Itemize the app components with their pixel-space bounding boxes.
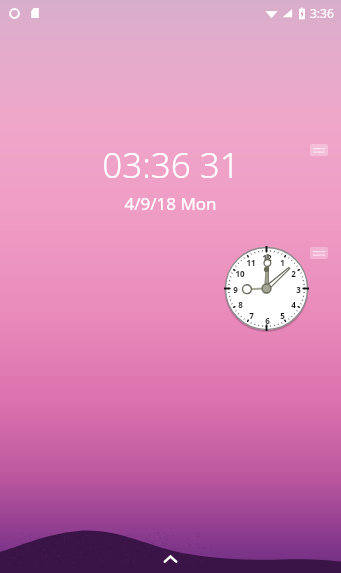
staticText: 3 bbox=[296, 284, 301, 295]
staticText: 3:36 bbox=[310, 5, 334, 21]
staticText: 5 bbox=[280, 310, 285, 321]
button[interactable]: 03:36 31 bbox=[0, 141, 341, 215]
staticText: 12 bbox=[262, 252, 272, 263]
staticText: 6 bbox=[265, 315, 270, 326]
staticText: 1 bbox=[280, 257, 285, 268]
staticText: 9 bbox=[233, 284, 238, 295]
staticText: 8 bbox=[238, 299, 243, 310]
button[interactable]: Open app drawer bbox=[155, 544, 185, 573]
button[interactable]: Analog clock bbox=[224, 246, 309, 331]
button[interactable]: Resize widget bbox=[310, 144, 328, 156]
button[interactable]: Resize widget bbox=[310, 247, 328, 259]
staticText: 4 bbox=[291, 299, 296, 310]
staticText: 4/9/18 Mon bbox=[124, 192, 217, 215]
staticText: 10 bbox=[235, 268, 245, 279]
staticText: 11 bbox=[246, 257, 256, 268]
staticText: 7 bbox=[249, 310, 254, 321]
staticText: 2 bbox=[291, 268, 296, 279]
staticText: 03:36 31 bbox=[102, 141, 240, 189]
